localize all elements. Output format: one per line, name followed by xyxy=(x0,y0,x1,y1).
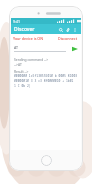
staticText: AT xyxy=(14,45,19,50)
staticText: Sending command --> xyxy=(14,57,49,61)
button[interactable]: Send xyxy=(70,44,79,53)
staticText: 9:41 xyxy=(13,19,20,24)
staticText: 00000010 3 3 c3 8f0000010 + 1b01 xyxy=(14,79,74,83)
staticText: Discover xyxy=(14,26,35,33)
staticText: 1 C 0b 2| xyxy=(14,84,31,88)
button[interactable]: Search xyxy=(57,26,64,33)
staticText: Result --> xyxy=(14,69,29,73)
button[interactable]: Disconnect xyxy=(57,36,79,41)
staticText: 0000000 1c5f138555010 b 0005 81003 xyxy=(14,74,78,78)
staticText: Disconnect xyxy=(58,36,78,41)
staticText: -->AT xyxy=(14,62,22,66)
button[interactable]: Bluetooth xyxy=(64,26,71,33)
staticText: Your device is ON xyxy=(13,36,43,41)
button[interactable]: More options xyxy=(71,26,78,33)
